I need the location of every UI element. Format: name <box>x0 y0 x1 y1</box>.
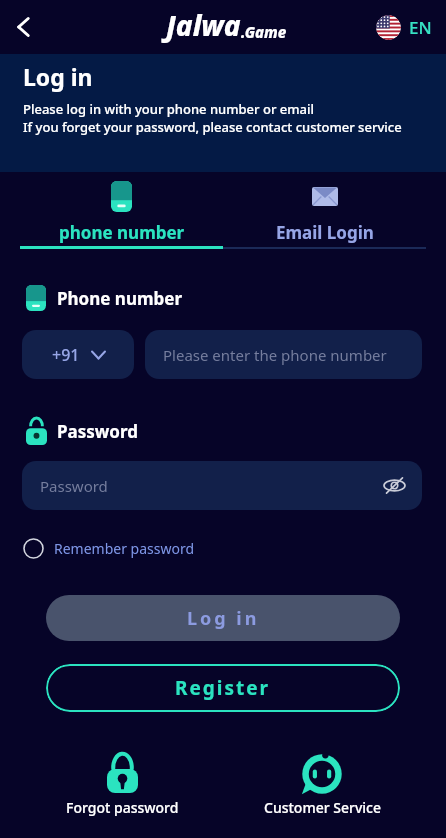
staticText: .Game <box>241 22 287 42</box>
staticText: Log in <box>23 61 93 92</box>
button[interactable]: phone number <box>20 181 223 244</box>
staticText: Password <box>57 420 138 443</box>
staticText: If you forget your password, please cont… <box>23 118 402 136</box>
staticText: Email Login <box>276 221 374 244</box>
staticText: Phone number <box>57 287 183 310</box>
button[interactable]: Log in <box>46 595 400 641</box>
staticText: phone number <box>59 221 185 244</box>
button[interactable]: +91 <box>22 330 134 379</box>
button[interactable]: Please enter the phone number <box>145 330 422 379</box>
staticText: Password <box>40 476 108 496</box>
staticText: +91 <box>52 344 80 366</box>
button[interactable]: Customer Service <box>257 753 387 817</box>
staticText: Remember password <box>54 539 195 558</box>
staticText: Please enter the phone number <box>163 345 387 365</box>
button[interactable]: Remember password <box>23 538 195 559</box>
button[interactable]: Forgot password <box>57 753 187 817</box>
button[interactable] <box>6 9 42 45</box>
staticText: EN <box>409 16 432 39</box>
staticText: Log in <box>187 606 260 631</box>
staticText: Forgot password <box>66 798 179 817</box>
button[interactable]: Password <box>22 461 422 510</box>
staticText: Please log in with your phone number or … <box>23 100 314 118</box>
staticText: Jalwa <box>166 6 241 44</box>
button[interactable]: Register <box>46 664 400 712</box>
staticText: Customer Service <box>264 798 381 817</box>
button[interactable]: Email Login <box>223 181 426 244</box>
staticText: Register <box>175 675 271 701</box>
button[interactable]: EN <box>376 15 432 40</box>
